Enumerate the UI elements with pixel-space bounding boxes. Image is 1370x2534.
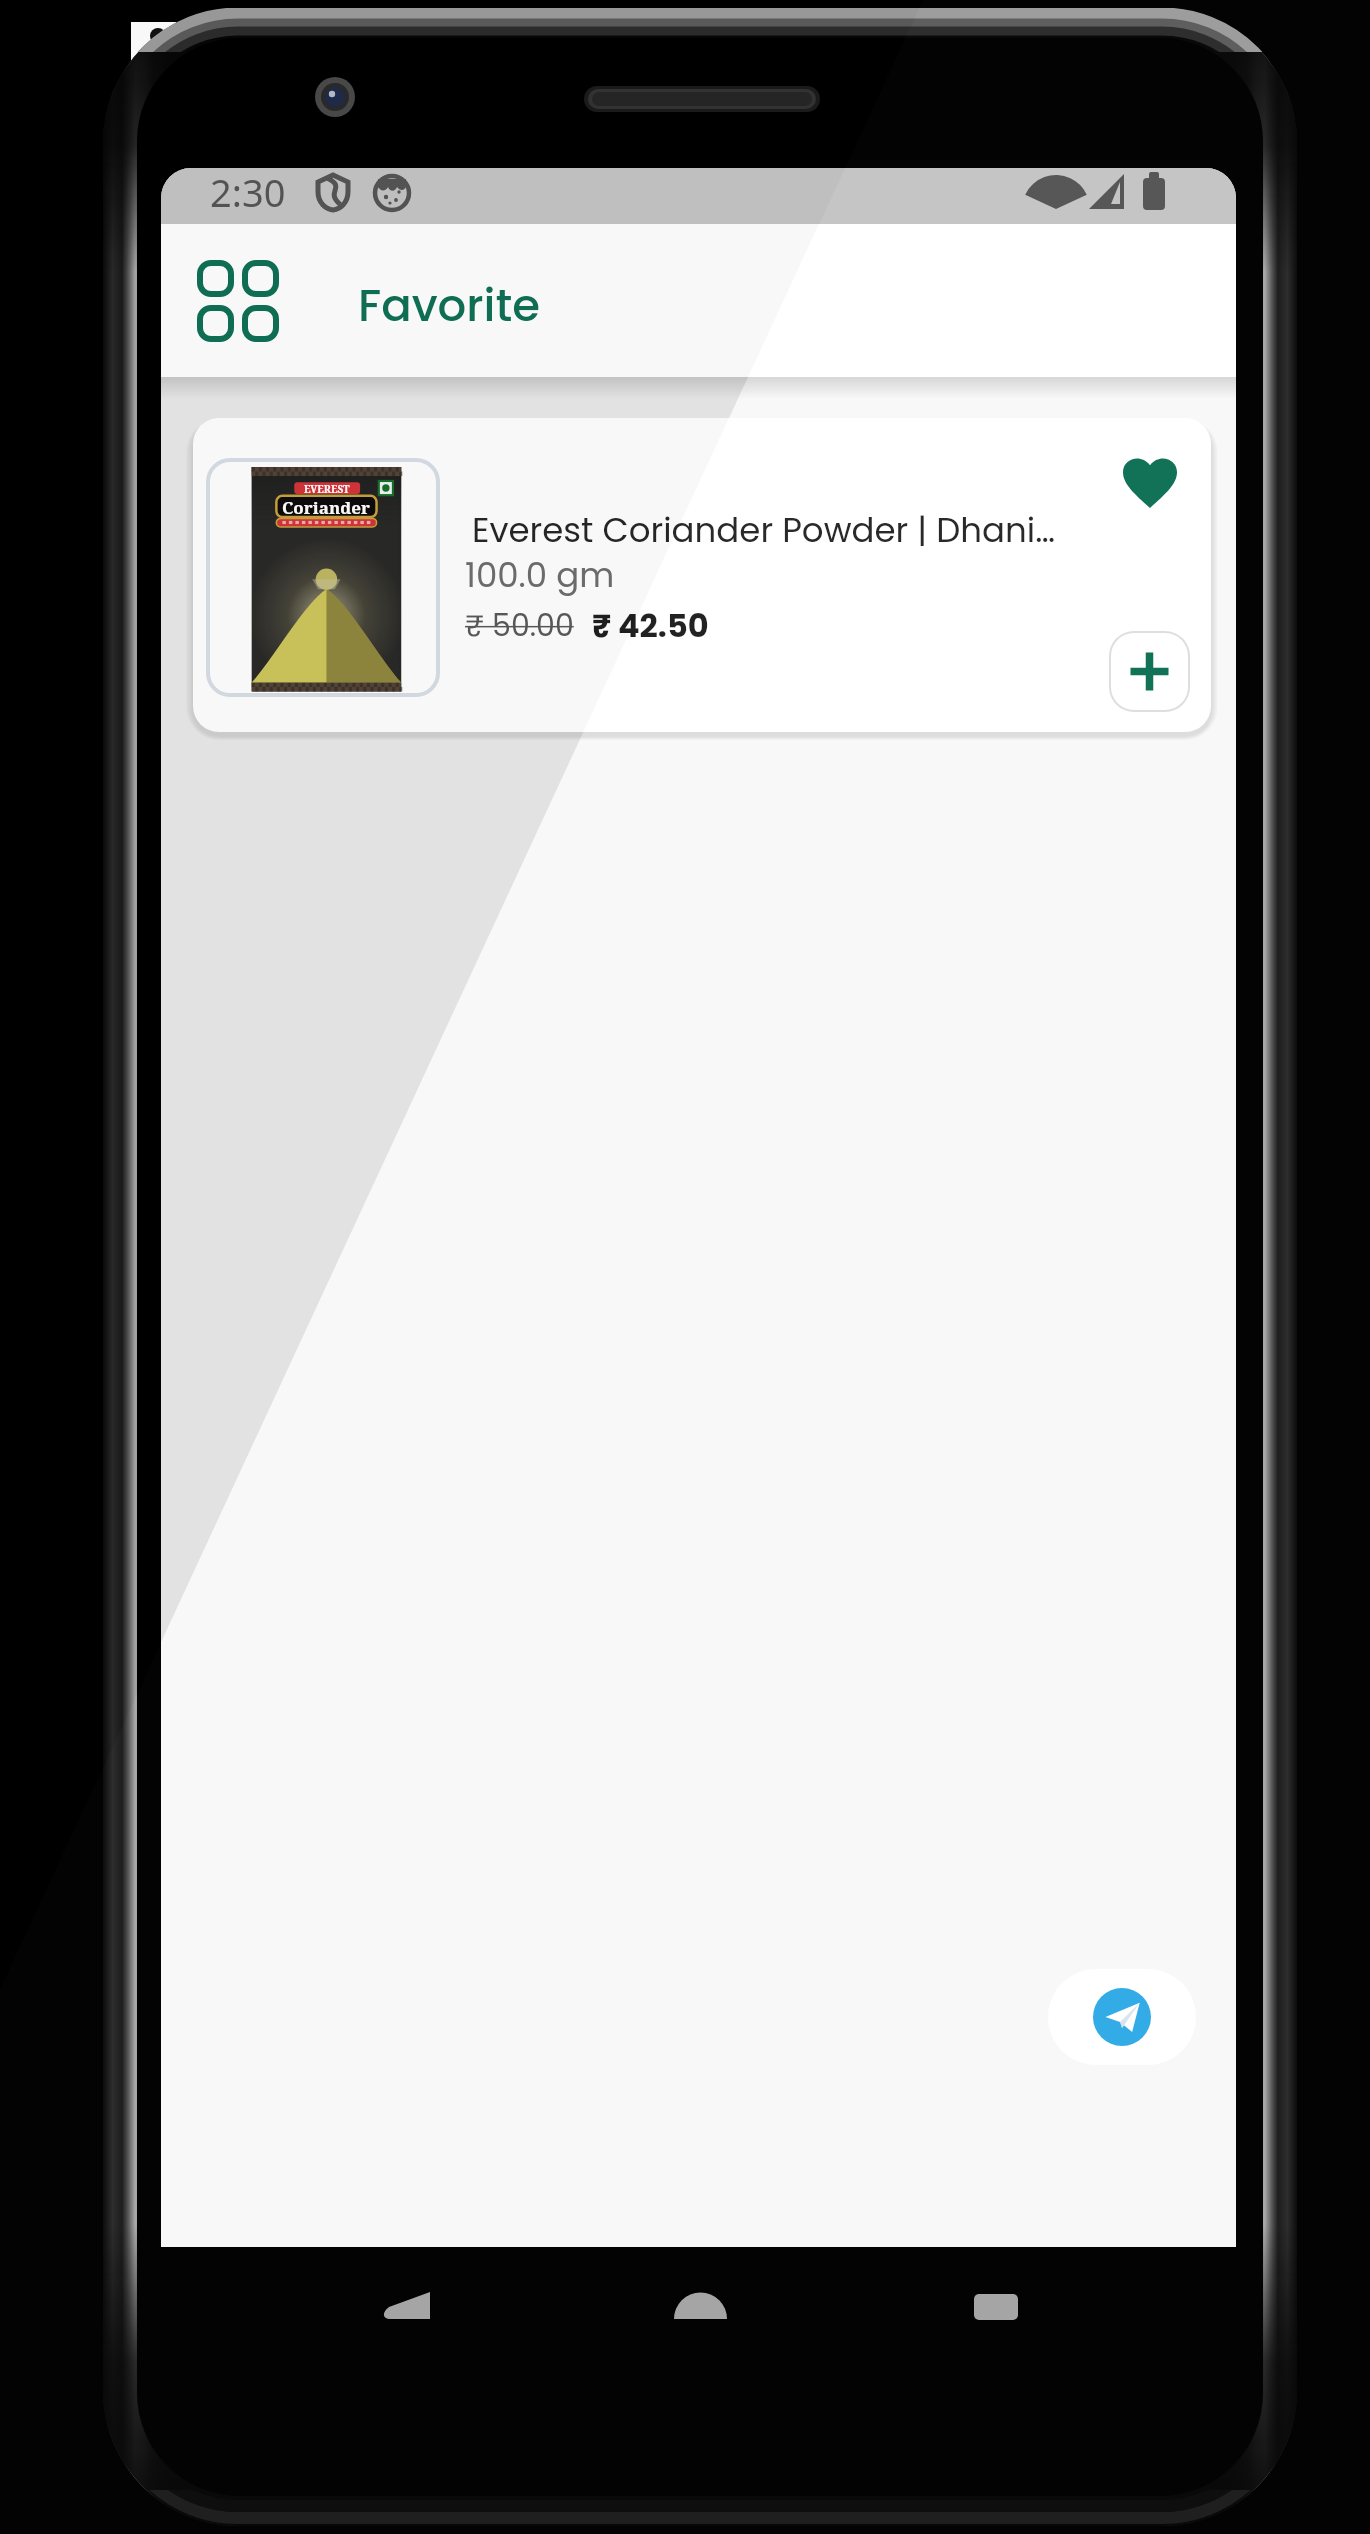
- staticText: 100.0 gm: [465, 551, 615, 599]
- button[interactable]: Favorite: [1116, 448, 1184, 516]
- staticText: Everest Coriander Powder | Dhani…: [472, 506, 1112, 554]
- staticText: Coriander: [282, 496, 370, 517]
- button[interactable]: Menu: [197, 260, 279, 342]
- staticText: 2:30: [210, 168, 286, 218]
- button[interactable]: Add to cart: [1109, 631, 1190, 712]
- staticText: ₹ 42.50: [592, 603, 709, 648]
- staticText: ₹ 50.00: [465, 605, 574, 647]
- button[interactable]: Telegram: [1048, 1969, 1196, 2065]
- button[interactable]: EVEREST: [193, 418, 1211, 732]
- staticText: Favorite: [358, 274, 540, 337]
- staticText: EVEREST: [304, 482, 350, 494]
